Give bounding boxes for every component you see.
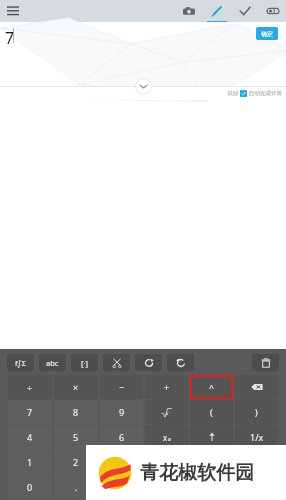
staticText: 识别 bbox=[227, 90, 238, 97]
button[interactable]: x bbox=[145, 450, 188, 474]
button[interactable]: Draw bbox=[207, 1, 227, 21]
staticText: x bbox=[163, 432, 168, 443]
button[interactable]: ≈ bbox=[235, 475, 278, 499]
button[interactable]: Up bbox=[190, 425, 233, 449]
button[interactable]: Eraser bbox=[263, 1, 283, 21]
staticText: 确定 bbox=[261, 30, 273, 38]
staticText: 4 bbox=[27, 431, 33, 443]
staticText: , bbox=[120, 481, 123, 493]
button[interactable]: Menu bbox=[3, 1, 23, 21]
button[interactable]: ^ bbox=[190, 375, 233, 399]
staticText: ( bbox=[210, 406, 213, 418]
button[interactable]: Expand bbox=[135, 78, 152, 95]
staticText: 7 bbox=[27, 406, 33, 418]
button[interactable]: Backspace bbox=[235, 375, 278, 399]
staticText: 自动完成计算 bbox=[249, 90, 282, 97]
staticText: 2 bbox=[73, 456, 79, 468]
staticText: . bbox=[75, 481, 78, 493]
staticText: f∫Σ bbox=[15, 358, 26, 368]
button[interactable]: 确定 bbox=[256, 27, 278, 40]
button[interactable]: Square root bbox=[145, 400, 188, 424]
button[interactable]: > bbox=[190, 475, 233, 499]
staticText: [·] bbox=[81, 358, 88, 368]
button[interactable]: Brackets bbox=[71, 354, 98, 371]
staticText: 5 bbox=[73, 431, 79, 443]
button[interactable]: ) bbox=[235, 400, 278, 424]
button[interactable]: 6 bbox=[100, 425, 143, 449]
button[interactable]: . bbox=[54, 475, 98, 499]
staticText: 3 bbox=[119, 456, 125, 468]
button[interactable]: Auto calculate bbox=[240, 90, 247, 97]
button[interactable]: ÷ bbox=[8, 375, 52, 399]
staticText: x bbox=[164, 456, 169, 468]
button[interactable]: Confirm bbox=[235, 1, 255, 21]
staticText: abc bbox=[46, 358, 59, 368]
button[interactable]: 0 bbox=[8, 475, 52, 499]
button[interactable]: Undo bbox=[135, 354, 162, 371]
staticText: 8 bbox=[73, 406, 79, 418]
button[interactable]: 1/x bbox=[235, 425, 278, 449]
button[interactable]: Redo bbox=[167, 354, 194, 371]
staticText: a bbox=[168, 436, 171, 443]
button[interactable]: Alphabet bbox=[39, 354, 66, 371]
staticText: 0 bbox=[27, 481, 33, 493]
button[interactable]: Delete bbox=[252, 354, 279, 371]
staticText: − bbox=[119, 381, 125, 393]
button[interactable]: 1 bbox=[8, 450, 52, 474]
button[interactable]: 2 bbox=[54, 450, 98, 474]
button[interactable]: = bbox=[235, 450, 278, 474]
staticText: ) bbox=[255, 406, 258, 418]
button[interactable]: < bbox=[145, 475, 188, 499]
button[interactable]: 9 bbox=[100, 400, 143, 424]
staticText: ^ bbox=[209, 381, 215, 393]
button[interactable]: 3 bbox=[100, 450, 143, 474]
staticText: 1/x bbox=[250, 431, 264, 443]
button[interactable]: Cut bbox=[103, 354, 130, 371]
button[interactable]: 8 bbox=[54, 400, 98, 424]
staticText: < bbox=[164, 481, 170, 493]
staticText: 6 bbox=[119, 431, 125, 443]
button[interactable]: , bbox=[100, 475, 143, 499]
staticText: 青花椒软件园 bbox=[140, 461, 254, 485]
button[interactable]: + bbox=[145, 375, 188, 399]
button[interactable]: ( bbox=[190, 400, 233, 424]
staticText: > bbox=[209, 481, 215, 493]
button[interactable]: 5 bbox=[54, 425, 98, 449]
staticText: × bbox=[73, 381, 79, 393]
button[interactable]: Functions bbox=[7, 354, 34, 371]
staticText: 9 bbox=[119, 406, 125, 418]
button[interactable]: y bbox=[190, 450, 233, 474]
staticText: 1 bbox=[27, 456, 33, 468]
staticText: ÷ bbox=[27, 381, 33, 393]
staticText: y bbox=[209, 456, 214, 468]
staticText: 7 bbox=[5, 27, 15, 49]
button[interactable]: 7 bbox=[8, 400, 52, 424]
button[interactable]: − bbox=[100, 375, 143, 399]
button[interactable]: 4 bbox=[8, 425, 52, 449]
button[interactable]: × bbox=[54, 375, 98, 399]
button[interactable]: Subscript bbox=[145, 425, 188, 449]
button[interactable]: Camera bbox=[179, 1, 199, 21]
staticText: + bbox=[164, 381, 170, 393]
